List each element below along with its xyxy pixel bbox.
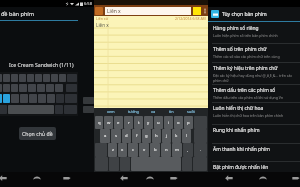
button[interactable]: x	[118, 143, 127, 157]
button[interactable]: g	[142, 129, 151, 143]
button[interactable]: m	[172, 143, 182, 157]
button[interactable]: r	[124, 116, 133, 129]
button[interactable]: .	[194, 143, 207, 157]
button[interactable]: l	[182, 129, 191, 143]
button[interactable]: Âm thanh khi nhấn phím	[208, 145, 300, 163]
button[interactable]: Recents	[168, 172, 180, 184]
staticText: x	[121, 147, 124, 153]
button[interactable]: Tùy chọn bàn phím	[208, 7, 300, 21]
button[interactable]: i	[164, 116, 173, 129]
button[interactable]: Home	[144, 172, 156, 184]
staticText: s	[115, 133, 118, 139]
staticText: tướng	[128, 109, 139, 114]
staticText: q	[98, 120, 101, 126]
button[interactable]: q	[95, 116, 103, 129]
button[interactable]: Rung khi nhấn phím	[208, 126, 300, 145]
button[interactable]: f	[132, 129, 141, 143]
button[interactable]: j	[162, 129, 171, 143]
button[interactable]: h	[152, 129, 161, 143]
staticText: Liên x	[96, 22, 109, 28]
staticText: Thêm dấu trên các phím số	[213, 87, 276, 94]
staticText: a	[104, 133, 107, 139]
staticText: f	[136, 133, 138, 139]
staticText: u	[157, 120, 160, 126]
button[interactable]: n	[161, 143, 171, 157]
staticText: Đặt các ký hiệu hay dùng như @,#,$,&... …	[213, 73, 297, 83]
staticText: p	[187, 120, 190, 126]
staticText: .	[200, 147, 202, 153]
button[interactable]: k	[172, 129, 181, 143]
staticText: Chọn chủ đề	[22, 130, 53, 137]
staticText: n	[165, 147, 168, 153]
button[interactable]: Thêm số trên phím chữ	[208, 45, 300, 64]
staticText: Rung khi nhấn phím	[213, 127, 260, 134]
button[interactable]: Bật phím được nhấn lên	[208, 163, 300, 181]
button[interactable]: App icon	[95, 7, 103, 15]
button[interactable]: Hàng phím số riêng	[208, 24, 300, 45]
button[interactable]: z	[108, 143, 117, 157]
staticText: r	[128, 120, 130, 126]
button[interactable]: Chọn chủ đề	[19, 127, 56, 140]
staticText: j	[166, 133, 168, 139]
button[interactable]: p	[184, 116, 193, 129]
button[interactable]: Luôn hiển thị chữ hoa	[208, 104, 300, 126]
button[interactable]: Home	[257, 172, 269, 184]
button[interactable]: Back	[118, 172, 130, 184]
button[interactable]: o	[174, 116, 183, 129]
button[interactable]: Thêm dấu trên các phím số	[208, 86, 300, 104]
staticText: k	[175, 133, 178, 139]
staticText: d	[125, 133, 128, 139]
staticText: g	[145, 133, 148, 139]
button[interactable]: u	[154, 116, 163, 129]
button[interactable]: Home	[31, 172, 43, 184]
staticText: Chủ đề bàn phím	[0, 10, 35, 18]
staticText: Thêm số trên phím chữ	[213, 46, 267, 53]
button[interactable]: Back	[223, 172, 235, 184]
staticText: 2/12/2014 6:58 AM	[175, 16, 206, 21]
button[interactable]: y	[144, 116, 153, 129]
staticText: i	[168, 120, 170, 126]
button[interactable]: v	[139, 143, 149, 157]
button[interactable]: w	[104, 116, 113, 129]
button[interactable]: Back	[0, 172, 9, 184]
staticText: Tùy chọn bàn phím	[222, 11, 267, 18]
button[interactable]: ,	[183, 143, 193, 157]
button[interactable]: a	[100, 129, 110, 143]
staticText: v	[143, 147, 146, 153]
staticText: Thêm các số vào các phím chữ trên cùng	[213, 54, 280, 59]
button[interactable]: Recents	[61, 172, 73, 184]
staticText: Thêm ký hiệu trên phím chữ	[213, 65, 278, 72]
staticText: m	[175, 147, 179, 153]
button[interactable]: e	[114, 116, 123, 129]
button[interactable]: c	[128, 143, 138, 157]
button[interactable]: d	[122, 129, 131, 143]
staticText: Ice Cream Sandwich (1/11)	[9, 61, 74, 68]
button[interactable]: Recents	[290, 172, 300, 184]
button[interactable]: b	[150, 143, 160, 157]
staticText: Liên xứ	[96, 16, 108, 21]
button[interactable]: Thêm ký hiệu trên phím chữ	[208, 64, 300, 86]
button[interactable]: s	[111, 129, 121, 143]
staticText: xa	[151, 109, 156, 114]
button[interactable]: More options	[201, 5, 208, 16]
staticText: z	[112, 147, 114, 153]
staticText: y	[147, 120, 150, 126]
staticText: Liên x	[107, 8, 121, 15]
staticText: suốt	[187, 109, 195, 114]
staticText: h	[155, 133, 158, 139]
staticText: o	[177, 120, 180, 126]
staticText: w	[107, 120, 111, 126]
staticText: Luôn hiện phím số trên bàn phím chính	[213, 33, 278, 38]
button[interactable]: t	[134, 116, 143, 129]
staticText: e	[117, 120, 120, 126]
